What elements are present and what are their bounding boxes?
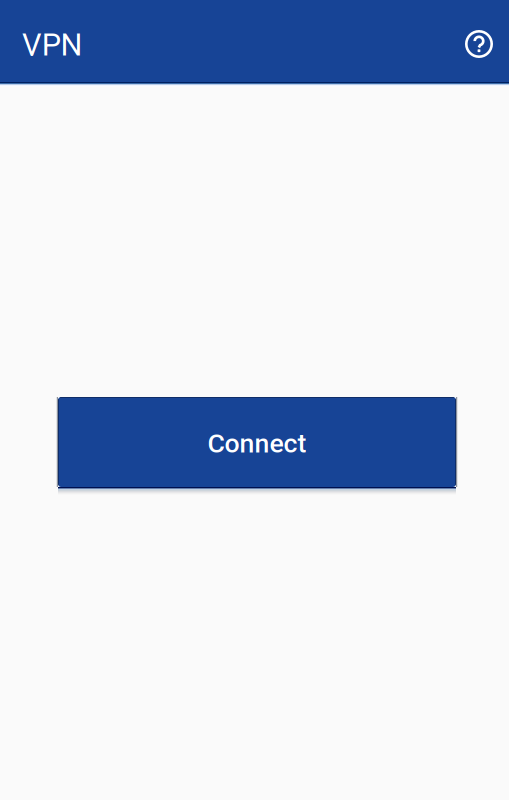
- staticText: Connect: [207, 428, 306, 459]
- button[interactable]: Connect: [58, 397, 456, 487]
- staticText: VPN: [22, 27, 82, 63]
- button[interactable]: Help: [456, 21, 502, 67]
